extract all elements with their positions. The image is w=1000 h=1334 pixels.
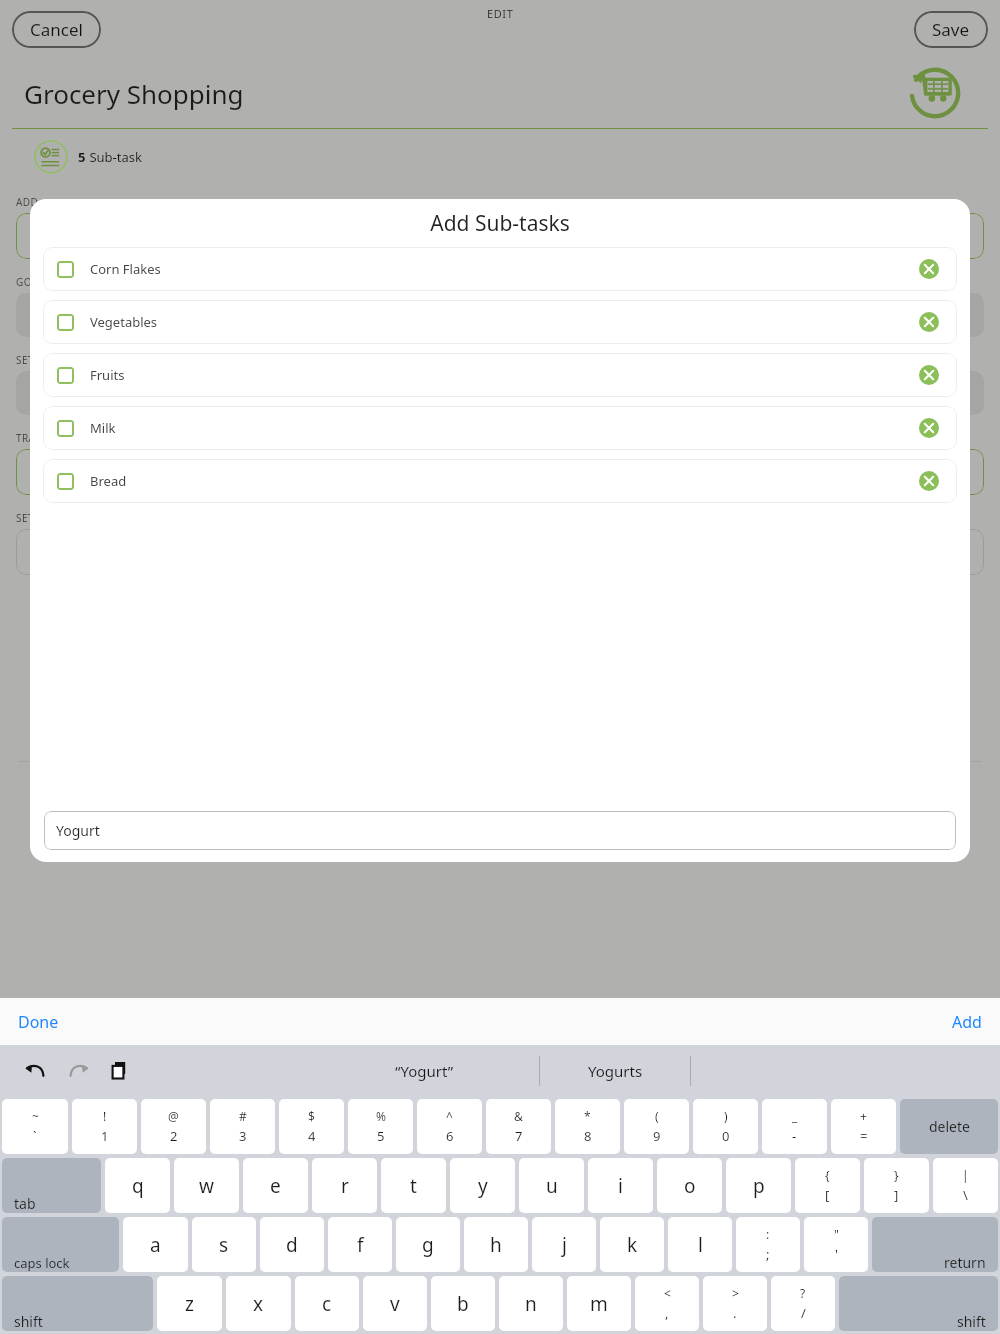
button[interactable]: q bbox=[105, 1158, 170, 1213]
button[interactable]: ^ bbox=[417, 1099, 482, 1154]
button[interactable]: x bbox=[226, 1276, 291, 1331]
button[interactable]: z bbox=[157, 1276, 222, 1331]
button[interactable]: Undo bbox=[20, 1056, 50, 1086]
button[interactable]: f bbox=[328, 1217, 392, 1272]
button[interactable]: ( bbox=[624, 1099, 689, 1154]
button[interactable] bbox=[16, 449, 984, 495]
button[interactable]: + bbox=[831, 1099, 896, 1154]
button[interactable]: Toggle Milk bbox=[57, 420, 74, 437]
button[interactable]: Yogurts bbox=[540, 1045, 690, 1097]
button[interactable]: return bbox=[872, 1217, 998, 1272]
button[interactable]: > bbox=[703, 1276, 767, 1331]
button[interactable]: j bbox=[532, 1217, 596, 1272]
button[interactable]: Remove Milk bbox=[917, 416, 941, 440]
button[interactable]: Add bbox=[940, 1003, 1000, 1041]
button[interactable]: } bbox=[864, 1158, 929, 1213]
button[interactable]: Toggle Vegetables bbox=[43, 300, 957, 344]
button[interactable]: Redo bbox=[64, 1056, 94, 1086]
button[interactable]: ~ bbox=[2, 1099, 68, 1154]
button[interactable]: k bbox=[600, 1217, 664, 1272]
button[interactable]: Toggle Fruits bbox=[43, 353, 957, 397]
button[interactable]: ! bbox=[72, 1099, 137, 1154]
button[interactable]: Paste bbox=[106, 1056, 136, 1086]
button[interactable]: | bbox=[933, 1158, 998, 1213]
button[interactable]: M bbox=[16, 213, 984, 259]
button[interactable]: Remove Corn Flakes bbox=[917, 257, 941, 281]
button[interactable]: n bbox=[499, 1276, 563, 1331]
button[interactable]: y bbox=[450, 1158, 515, 1213]
button[interactable]: Remove Vegetables bbox=[917, 310, 941, 334]
button[interactable]: ) bbox=[693, 1099, 758, 1154]
staticText: GO bbox=[16, 275, 32, 289]
button[interactable]: caps lock bbox=[2, 1217, 119, 1272]
button[interactable]: ? bbox=[771, 1276, 835, 1331]
button[interactable]: s bbox=[192, 1217, 256, 1272]
button[interactable]: $ bbox=[279, 1099, 344, 1154]
button[interactable]: Cancel bbox=[12, 11, 101, 48]
button[interactable] bbox=[16, 293, 984, 337]
button[interactable]: m bbox=[567, 1276, 631, 1331]
button[interactable]: * bbox=[555, 1099, 620, 1154]
button[interactable] bbox=[16, 529, 984, 575]
button[interactable]: g bbox=[396, 1217, 460, 1272]
staticText: w bbox=[199, 1173, 214, 1199]
button[interactable]: Toggle Fruits bbox=[57, 367, 74, 384]
button[interactable]: Save bbox=[914, 11, 988, 48]
button[interactable]: : bbox=[736, 1217, 800, 1272]
button[interactable]: Toggle Bread bbox=[57, 473, 74, 490]
staticText: : bbox=[766, 1226, 770, 1242]
button[interactable]: r bbox=[312, 1158, 377, 1213]
button[interactable]: d bbox=[260, 1217, 324, 1272]
button[interactable]: l bbox=[668, 1217, 732, 1272]
button[interactable]: & bbox=[486, 1099, 551, 1154]
button[interactable]: c bbox=[295, 1276, 359, 1331]
staticText: TRA bbox=[16, 431, 36, 445]
button[interactable]: " bbox=[804, 1217, 868, 1272]
button[interactable]: i bbox=[588, 1158, 653, 1213]
button[interactable]: Remove Fruits bbox=[917, 363, 941, 387]
staticText: t bbox=[410, 1173, 417, 1199]
staticText: l bbox=[698, 1232, 703, 1258]
staticText: = bbox=[860, 1127, 868, 1145]
button[interactable]: Toggle Bread bbox=[43, 459, 957, 503]
staticText: j bbox=[562, 1232, 567, 1258]
staticText: d bbox=[286, 1232, 298, 1258]
staticText: " bbox=[834, 1226, 839, 1242]
button[interactable]: o bbox=[657, 1158, 722, 1213]
button[interactable]: < bbox=[635, 1276, 699, 1331]
button[interactable]: Done bbox=[0, 1003, 71, 1041]
button[interactable]: e bbox=[243, 1158, 308, 1213]
button[interactable] bbox=[16, 371, 984, 415]
staticText: 5 bbox=[78, 148, 86, 166]
button[interactable]: p bbox=[726, 1158, 791, 1213]
button[interactable]: { bbox=[795, 1158, 860, 1213]
button[interactable]: w bbox=[174, 1158, 239, 1213]
button[interactable]: u bbox=[519, 1158, 584, 1213]
button[interactable]: % bbox=[348, 1099, 413, 1154]
staticText: \ bbox=[963, 1186, 968, 1204]
staticText: , bbox=[665, 1304, 669, 1322]
button[interactable]: @ bbox=[141, 1099, 206, 1154]
button[interactable]: h bbox=[464, 1217, 528, 1272]
button[interactable]: tab bbox=[2, 1158, 101, 1213]
button[interactable]: Yogurt bbox=[44, 811, 956, 850]
button[interactable]: Remove Bread bbox=[917, 469, 941, 493]
button[interactable]: # bbox=[210, 1099, 275, 1154]
button[interactable]: shift bbox=[839, 1276, 998, 1331]
staticText: q bbox=[132, 1173, 144, 1199]
button[interactable]: v bbox=[363, 1276, 427, 1331]
button[interactable]: delete bbox=[900, 1099, 998, 1154]
button[interactable]: b bbox=[431, 1276, 495, 1331]
button[interactable]: a bbox=[123, 1217, 188, 1272]
button[interactable]: Toggle Corn Flakes bbox=[43, 247, 957, 291]
button[interactable]: “Yogurt” bbox=[309, 1045, 539, 1097]
button[interactable]: Toggle Vegetables bbox=[57, 314, 74, 331]
staticText: g bbox=[422, 1232, 434, 1258]
button[interactable]: Category: Grocery bbox=[906, 64, 964, 122]
button[interactable]: t bbox=[381, 1158, 446, 1213]
staticText: 2 bbox=[170, 1127, 178, 1145]
button[interactable]: Toggle Corn Flakes bbox=[57, 261, 74, 278]
button[interactable]: _ bbox=[762, 1099, 827, 1154]
button[interactable]: Toggle Milk bbox=[43, 406, 957, 450]
button[interactable]: shift bbox=[2, 1276, 153, 1331]
